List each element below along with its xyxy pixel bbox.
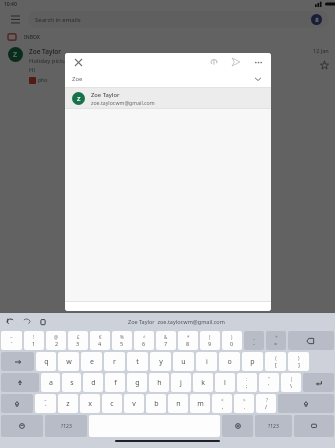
button[interactable]: ~: [35, 394, 56, 413]
staticText: Z: [77, 95, 81, 103]
staticText: h: [157, 378, 162, 388]
button[interactable]: Backspace: [288, 331, 334, 350]
button[interactable]: u: [173, 352, 194, 371]
button[interactable]: _: [244, 331, 264, 350]
button[interactable]: o: [219, 352, 240, 371]
button[interactable]: q: [36, 352, 56, 371]
button[interactable]: s: [62, 373, 81, 392]
button[interactable]: !: [24, 331, 44, 350]
staticText: 0: [230, 340, 234, 347]
button[interactable]: m: [190, 394, 210, 413]
staticText: o: [227, 357, 232, 367]
button[interactable]: r: [104, 352, 125, 371]
staticText: Z: [13, 50, 18, 60]
button[interactable]: Expand recipients: [252, 73, 264, 85]
staticText: u: [181, 357, 186, 367]
staticText: %: [120, 334, 124, 340]
button[interactable]: f: [105, 373, 125, 392]
button[interactable]: %: [112, 331, 132, 350]
button[interactable]: @: [46, 331, 66, 350]
staticText: g: [135, 378, 140, 388]
button[interactable]: £: [68, 331, 88, 350]
button[interactable]: Send: [229, 55, 243, 69]
button[interactable]: :: [237, 373, 257, 392]
button[interactable]: Tab: [1, 352, 34, 371]
button[interactable]: n: [168, 394, 188, 413]
button[interactable]: +: [266, 331, 286, 350]
button[interactable]: Hide keyboard: [294, 415, 334, 437]
button[interactable]: &: [156, 331, 176, 350]
button[interactable]: >: [234, 394, 254, 413]
button[interactable]: (: [200, 331, 220, 350]
button[interactable]: Shift: [1, 394, 33, 413]
button[interactable]: x: [80, 394, 100, 413]
staticText: INBOX: [24, 34, 40, 41]
staticText: ?123: [268, 423, 279, 430]
staticText: q: [44, 357, 49, 367]
button[interactable]: €: [90, 331, 110, 350]
button[interactable]: Shift: [278, 394, 334, 413]
button[interactable]: b: [146, 394, 166, 413]
staticText: =: [274, 340, 278, 347]
button[interactable]: Emoji: [1, 415, 43, 437]
button[interactable]: y: [150, 352, 171, 371]
button[interactable]: Undo: [4, 315, 17, 328]
button[interactable]: Zoe Taylor zoe.taylor.wm@gmail.com: [120, 316, 233, 327]
button[interactable]: Close: [71, 55, 85, 69]
staticText: y: [159, 357, 163, 367]
button[interactable]: c: [102, 394, 122, 413]
button[interactable]: Open navigation menu: [6, 10, 24, 28]
button[interactable]: Z: [65, 88, 271, 108]
button[interactable]: ": [259, 373, 279, 392]
button[interactable]: t: [127, 352, 148, 371]
button[interactable]: i: [196, 352, 217, 371]
button[interactable]: h: [149, 373, 169, 392]
staticText: ]: [298, 361, 300, 368]
staticText: 10:40: [4, 1, 17, 8]
button[interactable]: Clipboard: [36, 315, 49, 328]
button[interactable]: d: [83, 373, 103, 392]
staticText: }: [298, 355, 300, 361]
button[interactable]: e: [81, 352, 102, 371]
button[interactable]: {: [265, 352, 286, 371]
staticText: 4: [98, 340, 102, 347]
button[interactable]: Search in emails: [28, 11, 329, 28]
button[interactable]: g: [127, 373, 147, 392]
staticText: -: [253, 340, 255, 347]
staticText: i: [206, 357, 208, 367]
button[interactable]: ?: [256, 394, 276, 413]
button[interactable]: ^: [134, 331, 154, 350]
staticText: Hi: [29, 66, 35, 74]
button[interactable]: v: [124, 394, 144, 413]
button[interactable]: Caps lock: [1, 373, 39, 392]
button[interactable]: z: [58, 394, 78, 413]
button[interactable]: |: [281, 373, 301, 392]
button[interactable]: Enter: [303, 373, 334, 392]
button[interactable]: More options: [251, 55, 265, 69]
button[interactable]: l: [215, 373, 235, 392]
button[interactable]: w: [58, 352, 79, 371]
button[interactable]: Attach file: [207, 55, 221, 69]
staticText: (: [209, 334, 211, 340]
button[interactable]: p: [242, 352, 263, 371]
button[interactable]: ?123: [255, 415, 292, 437]
button[interactable]: Redo: [20, 315, 33, 328]
staticText: e: [90, 357, 94, 367]
button[interactable]: a: [41, 373, 60, 392]
button[interactable]: ): [222, 331, 242, 350]
button[interactable]: ~: [1, 331, 22, 350]
staticText: £: [77, 334, 80, 340]
button[interactable]: ?123: [45, 415, 87, 437]
button[interactable]: }: [288, 352, 309, 371]
button[interactable]: j: [171, 373, 191, 392]
staticText: c: [110, 399, 114, 409]
staticText: 8: [186, 340, 190, 347]
staticText: f: [114, 378, 117, 388]
staticText: +: [275, 334, 278, 340]
button[interactable]: <: [212, 394, 232, 413]
button[interactable]: At sign: [222, 415, 253, 437]
button[interactable]: *: [178, 331, 198, 350]
button[interactable]: k: [193, 373, 213, 392]
staticText: k: [201, 378, 205, 388]
